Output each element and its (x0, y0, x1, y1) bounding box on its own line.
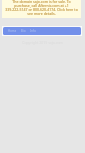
staticText: The domain sajo.com is for sale. To purc… (5, 0, 78, 16)
button[interactable]: The domain sajo.com is for sale. To purc… (2, 0, 81, 18)
button[interactable]: Home (8, 29, 17, 33)
button[interactable]: Home (3, 27, 81, 35)
staticText: Home (8, 29, 17, 33)
button[interactable]: Bio (21, 29, 26, 33)
button[interactable]: Info (30, 29, 37, 33)
staticText: Bio (21, 29, 26, 33)
staticText: Info (30, 29, 37, 33)
